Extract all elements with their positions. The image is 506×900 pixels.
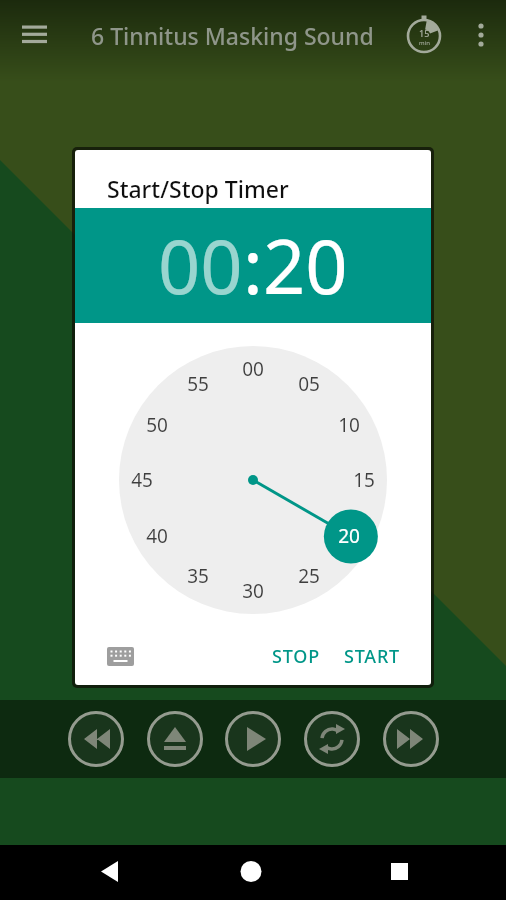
staticText: 20 xyxy=(338,523,360,549)
staticText: 20 xyxy=(263,215,348,316)
button[interactable] xyxy=(99,638,143,676)
staticText: Start/Stop Timer xyxy=(107,173,289,204)
staticText: 00 xyxy=(158,215,243,316)
staticText: START xyxy=(344,644,401,669)
button[interactable] xyxy=(301,708,363,770)
button[interactable] xyxy=(65,708,127,770)
button[interactable] xyxy=(462,13,502,57)
button[interactable] xyxy=(373,850,417,894)
staticText: 40 xyxy=(146,523,168,549)
staticText: 30 xyxy=(242,578,264,604)
staticText: STOP xyxy=(272,644,320,669)
staticText: 15 xyxy=(419,27,430,39)
staticText: 05 xyxy=(298,371,320,397)
button[interactable] xyxy=(222,708,284,770)
button[interactable] xyxy=(380,708,442,770)
staticText: 35 xyxy=(187,563,209,589)
button[interactable] xyxy=(12,16,56,54)
button[interactable] xyxy=(144,708,206,770)
staticText: 50 xyxy=(146,412,168,438)
button[interactable] xyxy=(402,13,446,57)
button[interactable] xyxy=(88,850,132,894)
button[interactable]: START xyxy=(330,641,414,671)
staticText: 10 xyxy=(338,412,360,438)
staticText: 25 xyxy=(298,563,320,589)
staticText: 55 xyxy=(187,371,209,397)
staticText: 00 xyxy=(242,356,264,382)
button[interactable]: STOP xyxy=(258,641,334,671)
staticText: 15 xyxy=(353,467,375,493)
staticText: : xyxy=(243,215,263,316)
staticText: 6 Tinnitus Masking Sound xyxy=(91,20,374,51)
button[interactable] xyxy=(231,850,275,894)
staticText: min xyxy=(419,39,430,47)
staticText: 45 xyxy=(131,467,153,493)
